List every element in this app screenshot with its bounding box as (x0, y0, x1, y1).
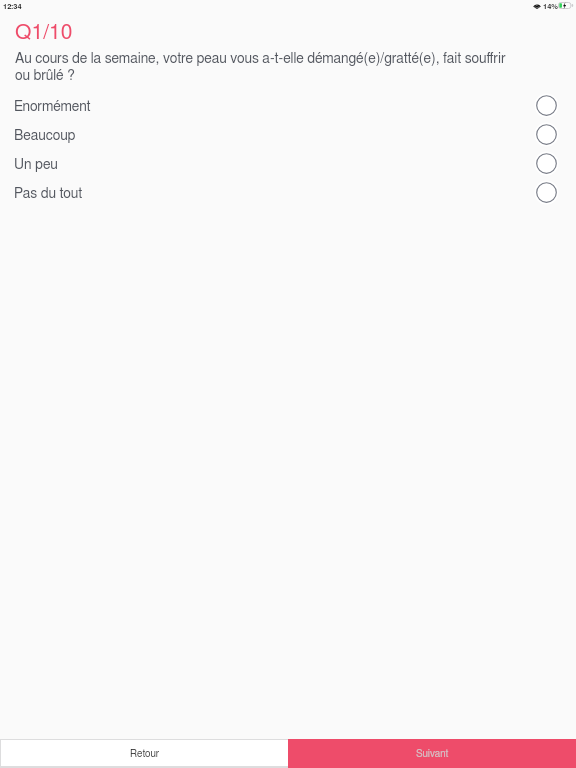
staticText: Q1/10 (15, 22, 73, 43)
staticText: 12:34 (3, 3, 22, 11)
staticText: Au cours de la semaine, votre peau vous … (15, 52, 515, 83)
button[interactable]: Un peu (0, 149, 576, 178)
staticText: Suivant (416, 749, 449, 759)
button[interactable]: Enormément (0, 91, 576, 120)
staticText: Beaucoup (14, 129, 76, 143)
staticText: Un peu (14, 158, 58, 172)
staticText: Enormément (14, 100, 91, 114)
staticText: 14% (543, 3, 559, 11)
staticText: Retour (130, 749, 159, 759)
button[interactable]: Retour (1, 740, 288, 766)
button[interactable]: Beaucoup (0, 120, 576, 149)
other: Battery 14 percent, charging (558, 2, 574, 9)
staticText: Pas du tout (14, 187, 83, 201)
button[interactable]: Suivant (288, 739, 576, 768)
other: Wi-Fi (533, 3, 541, 9)
button[interactable]: Pas du tout (0, 178, 576, 207)
